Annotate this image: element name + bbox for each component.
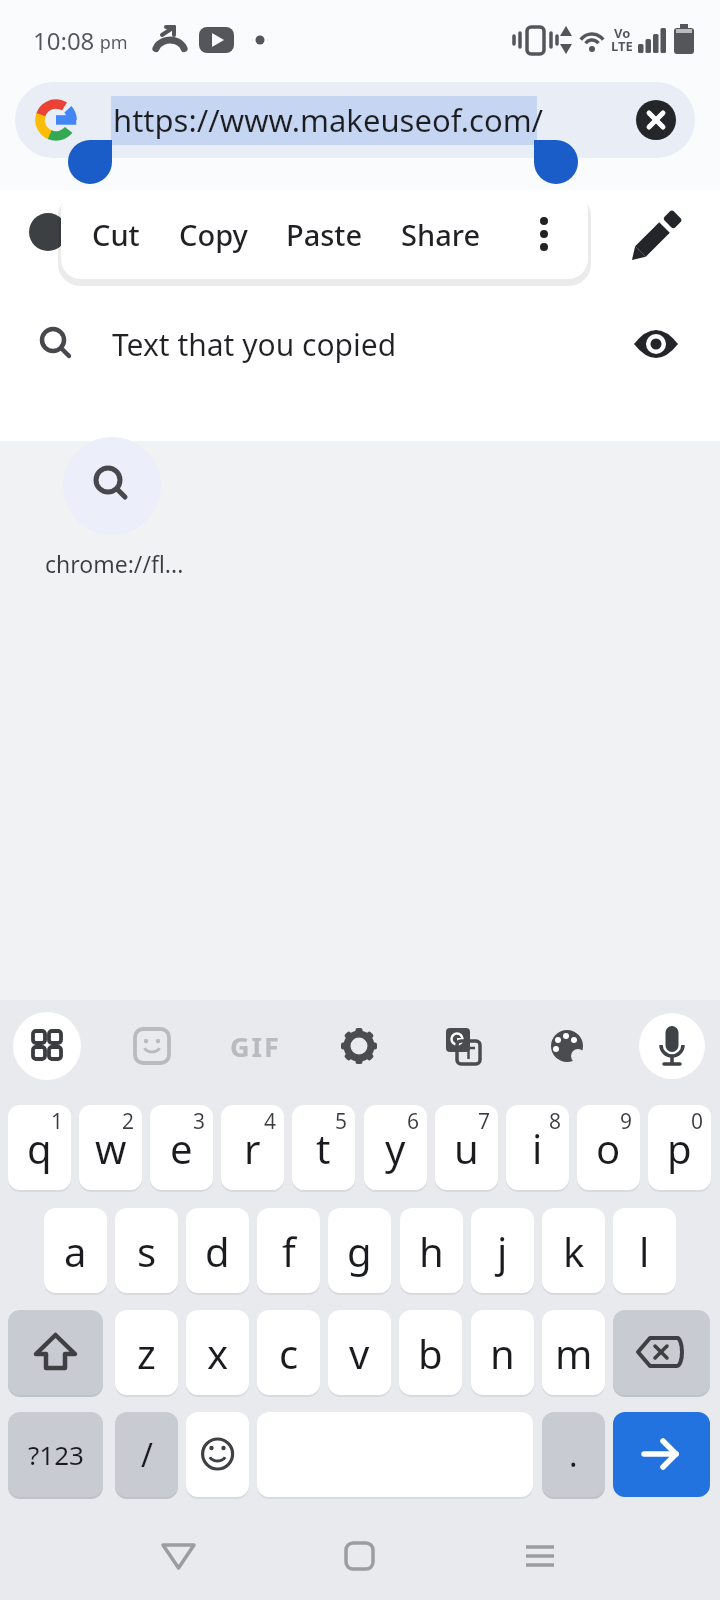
staticText: 0 xyxy=(691,1107,704,1136)
button[interactable]: c xyxy=(257,1310,320,1395)
staticText: 6 xyxy=(407,1107,420,1136)
staticText: t xyxy=(316,1121,331,1175)
button[interactable] xyxy=(8,1310,103,1395)
button[interactable] xyxy=(122,1016,182,1076)
staticText: GIF xyxy=(230,1028,281,1065)
button[interactable]: s xyxy=(115,1208,178,1293)
button[interactable] xyxy=(0,300,720,388)
staticText: 9 xyxy=(620,1107,633,1136)
button[interactable]: Cut xyxy=(71,200,161,268)
button[interactable]: Paste xyxy=(279,200,369,268)
button[interactable]: p xyxy=(648,1105,711,1190)
staticText: ?123 xyxy=(28,1437,84,1472)
button[interactable] xyxy=(432,1016,492,1076)
button[interactable] xyxy=(140,1516,220,1596)
staticText: l xyxy=(639,1224,650,1278)
staticText: x xyxy=(207,1326,229,1380)
button[interactable]: d xyxy=(186,1208,249,1293)
staticText: r xyxy=(244,1121,261,1175)
staticText: chrome://fl... xyxy=(45,548,184,579)
button[interactable]: . xyxy=(542,1412,605,1497)
button[interactable] xyxy=(225,1016,285,1076)
button[interactable]: f xyxy=(257,1208,320,1293)
staticText: q xyxy=(27,1121,52,1175)
staticText: o xyxy=(596,1121,621,1175)
button[interactable]: r xyxy=(221,1105,284,1190)
staticText: Cut xyxy=(92,215,140,254)
staticText: m xyxy=(555,1326,593,1380)
staticText: 5 xyxy=(335,1107,348,1136)
button[interactable] xyxy=(613,1310,710,1395)
staticText: 2 xyxy=(122,1107,135,1136)
button[interactable] xyxy=(13,1012,81,1080)
button[interactable]: v xyxy=(328,1310,391,1395)
staticText: 8 xyxy=(549,1107,562,1136)
button[interactable]: / xyxy=(115,1412,178,1497)
button[interactable]: u xyxy=(435,1105,498,1190)
button[interactable]: k xyxy=(542,1208,605,1293)
staticText: Share xyxy=(401,215,481,254)
staticText: i xyxy=(532,1121,543,1175)
button[interactable] xyxy=(632,96,680,144)
staticText: Copy xyxy=(179,215,248,254)
staticText: p xyxy=(667,1121,692,1175)
button[interactable]: l xyxy=(613,1208,676,1293)
button[interactable]: x xyxy=(186,1310,249,1395)
button[interactable]: b xyxy=(399,1310,462,1395)
button[interactable]: t xyxy=(292,1105,355,1190)
button[interactable]: Copy xyxy=(168,200,258,268)
staticText: v xyxy=(349,1326,370,1380)
staticText: f xyxy=(282,1224,296,1278)
button[interactable]: Share xyxy=(396,200,486,268)
staticText: j xyxy=(497,1224,508,1278)
staticText: Vo xyxy=(614,24,631,42)
staticText: k xyxy=(563,1224,585,1278)
button[interactable] xyxy=(613,1412,710,1497)
button[interactable] xyxy=(639,1013,705,1079)
staticText: e xyxy=(170,1121,193,1175)
button[interactable]: i xyxy=(506,1105,569,1190)
button[interactable] xyxy=(514,200,574,268)
button[interactable]: g xyxy=(328,1208,391,1293)
button[interactable] xyxy=(537,1016,597,1076)
button[interactable]: q xyxy=(8,1105,71,1190)
staticText: u xyxy=(454,1121,479,1175)
button[interactable] xyxy=(320,1516,400,1596)
button[interactable]: n xyxy=(471,1310,534,1395)
staticText: / xyxy=(141,1433,153,1477)
staticText: 4 xyxy=(264,1107,277,1136)
staticText: c xyxy=(279,1326,299,1380)
button[interactable] xyxy=(329,1016,389,1076)
staticText: 3 xyxy=(193,1107,206,1136)
button[interactable]: o xyxy=(577,1105,640,1190)
staticText: s xyxy=(137,1224,157,1278)
button[interactable]: ?123 xyxy=(8,1412,103,1497)
staticText: h xyxy=(419,1224,444,1278)
staticText: n xyxy=(490,1326,515,1380)
button[interactable]: w xyxy=(79,1105,142,1190)
staticText: Text that you copied xyxy=(112,324,397,365)
button[interactable] xyxy=(15,82,695,158)
staticText: LTE xyxy=(611,37,633,55)
button[interactable] xyxy=(620,200,692,272)
button[interactable]: h xyxy=(400,1208,463,1293)
staticText: g xyxy=(347,1224,372,1278)
button[interactable] xyxy=(500,1516,580,1596)
staticText: y xyxy=(385,1121,406,1175)
button[interactable]: e xyxy=(150,1105,213,1190)
staticText: w xyxy=(95,1121,127,1175)
staticText: 1 xyxy=(51,1107,64,1136)
staticText: b xyxy=(418,1326,443,1380)
staticText: a xyxy=(64,1224,87,1278)
button[interactable] xyxy=(186,1412,249,1497)
button[interactable] xyxy=(63,437,161,535)
staticText: . xyxy=(569,1433,578,1477)
button[interactable]: z xyxy=(115,1310,178,1395)
button[interactable]: a xyxy=(44,1208,107,1293)
button[interactable]: y xyxy=(364,1105,427,1190)
staticText: 7 xyxy=(478,1107,491,1136)
button[interactable]: m xyxy=(542,1310,605,1395)
button[interactable]: j xyxy=(471,1208,534,1293)
staticText: d xyxy=(205,1224,230,1278)
